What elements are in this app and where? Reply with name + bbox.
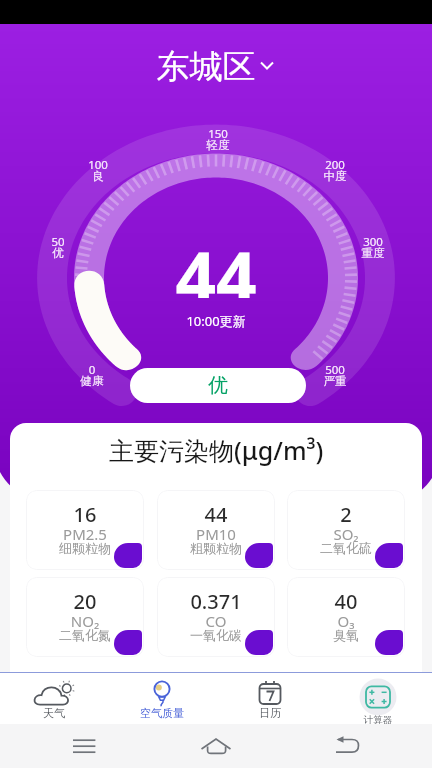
staticText: 500 <box>295 362 375 378</box>
staticText: 计算器 <box>324 714 432 726</box>
button[interactable]: 0.371 <box>157 577 275 657</box>
staticText: 10:00更新 <box>186 312 246 330</box>
button[interactable]: 16 <box>26 490 144 570</box>
staticText: 二氧化氮 <box>26 627 144 643</box>
staticText: CO <box>157 611 275 631</box>
button[interactable]: 20 <box>26 577 144 657</box>
staticText: 44 <box>175 228 257 298</box>
staticText: PM2.5 <box>26 524 144 544</box>
staticText: 0 <box>52 362 132 378</box>
staticText: 150 <box>178 126 258 142</box>
button[interactable]: 天气 <box>0 673 108 724</box>
staticText: 中度 <box>295 169 375 183</box>
staticText: 粗颗粒物 <box>157 540 275 556</box>
staticText: 2 <box>287 501 405 528</box>
staticText: 天气 <box>0 706 108 720</box>
staticText: 健康 <box>52 374 132 388</box>
staticText: 200 <box>295 157 375 173</box>
button[interactable]: 2 <box>287 490 405 570</box>
staticText: PM10 <box>157 524 275 544</box>
button[interactable]: 空气质量 <box>108 673 216 724</box>
staticText: NO₂ <box>26 611 144 631</box>
staticText: 良 <box>58 169 138 183</box>
staticText: 臭氧 <box>287 627 405 643</box>
staticText: 主要污染物(μg/m³) <box>109 433 324 467</box>
staticText: 300 <box>333 234 413 250</box>
staticText: 100 <box>58 157 138 173</box>
button[interactable]: 优 <box>130 368 306 403</box>
staticText: 0.371 <box>157 588 275 615</box>
staticText: 日历 <box>216 706 324 720</box>
staticText: O₃ <box>287 611 405 631</box>
staticText: 空气质量 <box>108 706 216 720</box>
staticText: 重度 <box>333 246 413 260</box>
button[interactable]: 东城区 <box>140 47 292 85</box>
button[interactable]: 日历 <box>216 673 324 724</box>
staticText: 严重 <box>295 374 375 388</box>
staticText: SO₂ <box>287 524 405 544</box>
staticText: 一氧化碳 <box>157 627 275 643</box>
button[interactable]: 40 <box>287 577 405 657</box>
staticText: 二氧化硫 <box>287 540 405 556</box>
staticText: 细颗粒物 <box>26 540 144 556</box>
staticText: 20 <box>26 588 144 615</box>
staticText: 优 <box>208 373 228 398</box>
staticText: 44 <box>157 501 275 528</box>
staticText: 轻度 <box>178 138 258 152</box>
staticText: 优 <box>18 246 98 260</box>
button[interactable]: 计算器 <box>324 673 432 724</box>
staticText: 16 <box>26 501 144 528</box>
staticText: 东城区 <box>130 46 282 84</box>
staticText: 50 <box>18 234 98 250</box>
button[interactable]: 44 <box>157 490 275 570</box>
staticText: 40 <box>287 588 405 615</box>
